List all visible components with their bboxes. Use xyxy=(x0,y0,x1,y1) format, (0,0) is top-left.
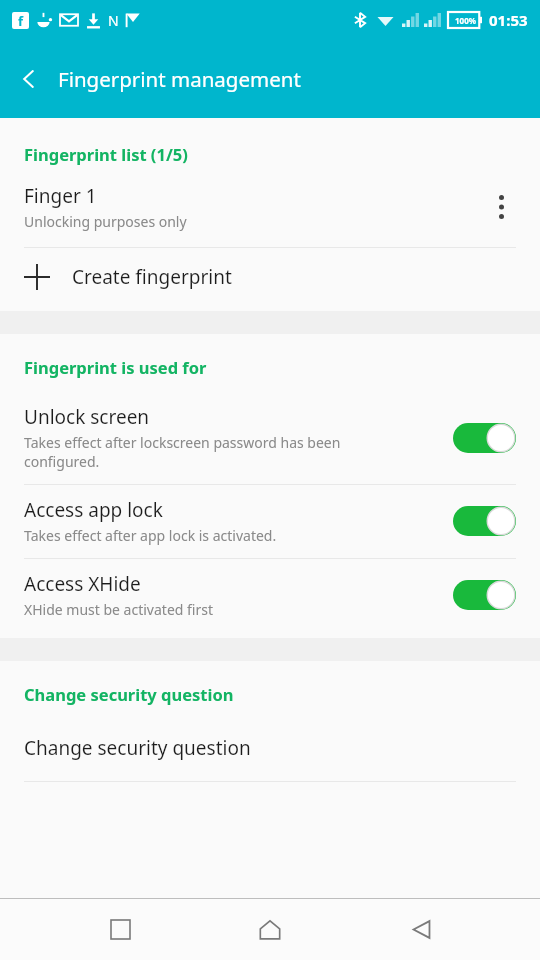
staticText: Change security question xyxy=(24,735,251,761)
staticText: Fingerprint is used for xyxy=(24,356,207,378)
button[interactable]: Access app lock xyxy=(0,485,540,558)
staticText: Access app lock xyxy=(24,497,163,523)
button[interactable]: Create fingerprint xyxy=(0,248,540,306)
button[interactable]: Back xyxy=(0,50,58,108)
staticText: f xyxy=(18,12,24,29)
button[interactable]: Toggle xyxy=(453,423,516,453)
staticText: Finger 1 xyxy=(24,183,97,209)
button[interactable]: Unlock screen xyxy=(0,392,540,484)
staticText: Takes effect after lockscreen password h… xyxy=(24,433,341,471)
staticText: XHide must be activated first xyxy=(24,600,213,619)
staticText: Change security question xyxy=(24,683,234,705)
button[interactable]: More options xyxy=(480,186,522,228)
button[interactable]: Back xyxy=(390,899,452,960)
button[interactable]: Toggle xyxy=(453,506,516,536)
staticText: N xyxy=(108,11,119,30)
staticText: Unlock screen xyxy=(24,404,150,430)
staticText: 100% xyxy=(455,15,476,26)
button[interactable]: Recent apps xyxy=(89,899,151,960)
button[interactable]: Finger 1 xyxy=(0,181,540,247)
staticText: Create fingerprint xyxy=(72,264,232,290)
staticText: Unlocking purposes only xyxy=(24,212,187,231)
staticText: Access XHide xyxy=(24,571,141,597)
staticText: Fingerprint management xyxy=(58,65,301,93)
button[interactable]: Access XHide xyxy=(0,559,540,632)
staticText: 01:53 xyxy=(489,10,528,30)
button[interactable]: Home xyxy=(239,899,301,960)
button[interactable]: Change security question xyxy=(0,723,540,781)
button[interactable]: Toggle xyxy=(453,580,516,610)
staticText: Takes effect after app lock is activated… xyxy=(24,526,277,545)
staticText: Fingerprint list (1/5) xyxy=(24,143,188,165)
